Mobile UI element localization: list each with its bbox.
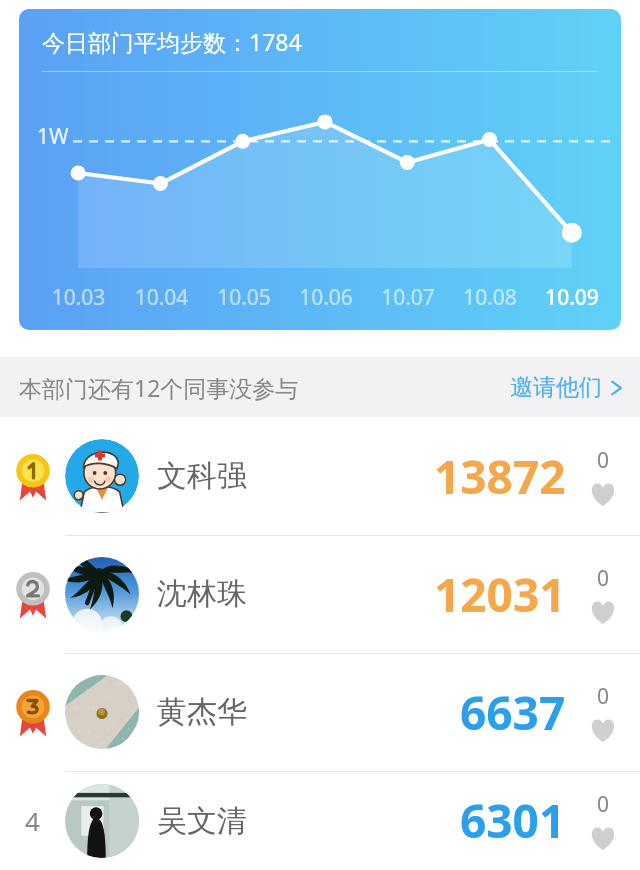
staticText: 10.05	[203, 283, 285, 312]
staticText: 吴文清	[157, 802, 247, 840]
staticText: 沈林珠	[157, 575, 247, 613]
staticText: 0	[597, 446, 610, 475]
staticText: 本部门还有12个同事没参与	[19, 372, 299, 403]
button[interactable]: Like	[566, 653, 640, 771]
staticText: 13872	[434, 445, 566, 508]
staticText: 6301	[460, 789, 566, 852]
staticText: 黄杰华	[157, 693, 247, 731]
staticText: 4	[25, 803, 40, 838]
button[interactable]: 4	[0, 771, 640, 870]
button[interactable]: 黄杰华	[0, 653, 640, 771]
staticText: 1W	[37, 122, 69, 151]
staticText: 10.06	[285, 283, 367, 312]
button[interactable]: 沈林珠	[0, 535, 640, 653]
button[interactable]: Like	[566, 535, 640, 653]
staticText: 10.09	[531, 283, 613, 312]
staticText: 6637	[460, 681, 566, 744]
staticText: 10.03	[37, 283, 120, 312]
staticText: 10.08	[449, 283, 531, 312]
staticText: 0	[597, 682, 610, 711]
button[interactable]: Like	[566, 417, 640, 535]
staticText: 邀请他们	[510, 373, 602, 402]
staticText: 文科强	[157, 457, 247, 495]
staticText: 0	[597, 564, 610, 593]
button[interactable]: 文科强	[0, 417, 640, 535]
staticText: 10.07	[367, 283, 449, 312]
staticText: 10.04	[120, 283, 203, 312]
staticText: 12031	[434, 563, 566, 626]
button[interactable]: Like	[566, 771, 640, 870]
button[interactable]: 今日部门平均步数：1784	[19, 9, 621, 330]
staticText: 今日部门平均步数：1784	[42, 26, 302, 57]
button[interactable]: 邀请他们	[500, 365, 640, 410]
staticText: 0	[597, 790, 610, 819]
